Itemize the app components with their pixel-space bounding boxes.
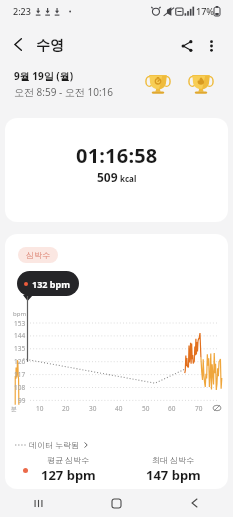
staticText: bpm (13, 310, 26, 318)
staticText: 심박수 (26, 250, 50, 260)
staticText: 분 (11, 405, 17, 413)
staticText: 144 (14, 331, 26, 340)
staticText: 117 (14, 370, 26, 379)
staticText: 평균 심박수 (47, 454, 90, 465)
button[interactable]: Calorie award (188, 71, 214, 97)
staticText: 126 (14, 357, 26, 366)
staticText: 147 bpm (146, 466, 201, 484)
staticText: 99 (18, 396, 26, 405)
button[interactable]: Recent apps (0, 489, 77, 517)
staticText: 40 (115, 404, 123, 413)
staticText: 17% (196, 5, 214, 17)
staticText: kcal (120, 173, 137, 184)
staticText: 60 (168, 404, 176, 413)
button[interactable]: Time award (145, 71, 171, 97)
staticText: 509 (97, 169, 118, 185)
staticText: 수영 (36, 37, 64, 55)
staticText: 127 bpm (41, 466, 96, 484)
staticText: 2:23 (13, 5, 31, 17)
staticText: 데이터 누락됨 (29, 439, 80, 450)
button[interactable]: Share (174, 33, 200, 59)
button[interactable]: 최대 심박수 (129, 454, 218, 484)
staticText: 153 (14, 319, 26, 328)
button[interactable]: 01:16:58 (5, 118, 228, 222)
staticText: 9월 19일 (월) (14, 69, 74, 83)
staticText: 20 (62, 404, 70, 413)
button[interactable]: Expand chart (212, 403, 222, 413)
button[interactable]: 데이터 누락됨 (15, 439, 89, 450)
staticText: 최대 심박수 (152, 454, 195, 465)
button[interactable]: Home (77, 489, 155, 517)
button[interactable]: Back (155, 489, 233, 517)
staticText: 01:16:58 (76, 142, 158, 169)
staticText: 10 (36, 404, 44, 413)
staticText: 135 (14, 344, 26, 353)
button[interactable]: Back (5, 31, 31, 57)
staticText: 132 bpm (32, 278, 70, 290)
staticText: 70 (195, 404, 203, 413)
staticText: 50 (142, 404, 150, 413)
staticText: 30 (89, 404, 97, 413)
button[interactable]: More options (198, 33, 224, 59)
button[interactable]: 심박수 (18, 247, 58, 263)
staticText: 오전 8:59 - 오전 10:16 (14, 85, 114, 99)
button[interactable]: 평균 심박수 (24, 454, 113, 484)
staticText: 108 (14, 383, 26, 392)
